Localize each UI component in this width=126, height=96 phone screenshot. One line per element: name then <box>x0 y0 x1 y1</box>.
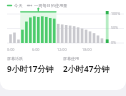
staticText: 9小时17分钟 <box>7 63 54 74</box>
button[interactable]: Hourly usage chart <box>7 10 124 53</box>
staticText: 2小时47分钟 <box>63 63 110 74</box>
staticText: 50% <box>111 25 119 30</box>
staticText: 屏幕活跃 <box>7 56 23 61</box>
staticText: 0:00 <box>7 47 15 52</box>
staticText: 12:00 <box>57 47 67 52</box>
staticText: 一周每日的使用量 <box>34 3 68 8</box>
staticText: 18:00 <box>82 47 92 52</box>
button[interactable]: 今天 <box>7 3 119 8</box>
button[interactable]: 屏幕活跃 <box>7 56 63 74</box>
staticText: 今天 <box>14 3 23 8</box>
staticText: 6:00 <box>32 47 40 52</box>
button[interactable]: 屏幕使用 <box>63 56 119 74</box>
staticText: 0% <box>111 40 117 45</box>
staticText: 100% <box>111 11 121 16</box>
staticText: 屏幕使用 <box>63 56 79 61</box>
